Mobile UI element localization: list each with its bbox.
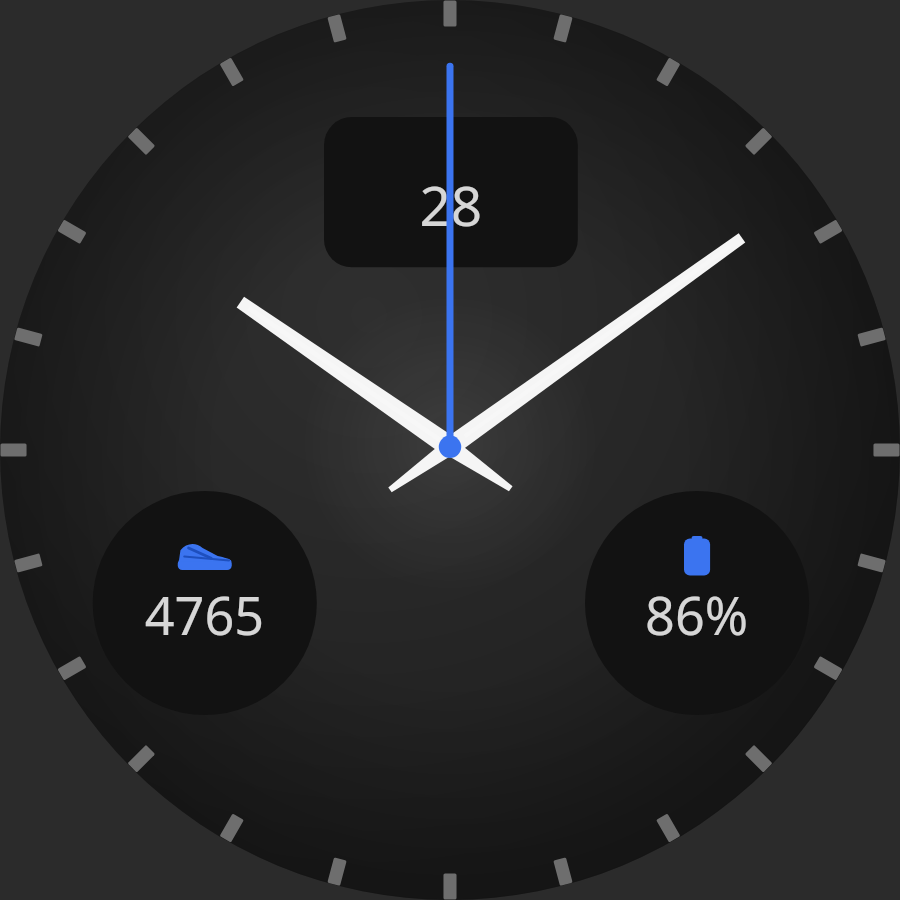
button[interactable]: Date complication, 28 xyxy=(0,0,900,900)
button[interactable]: Steps complication, 4765 steps xyxy=(0,0,900,900)
button[interactable]: Battery complication, 86 percent xyxy=(0,0,900,900)
